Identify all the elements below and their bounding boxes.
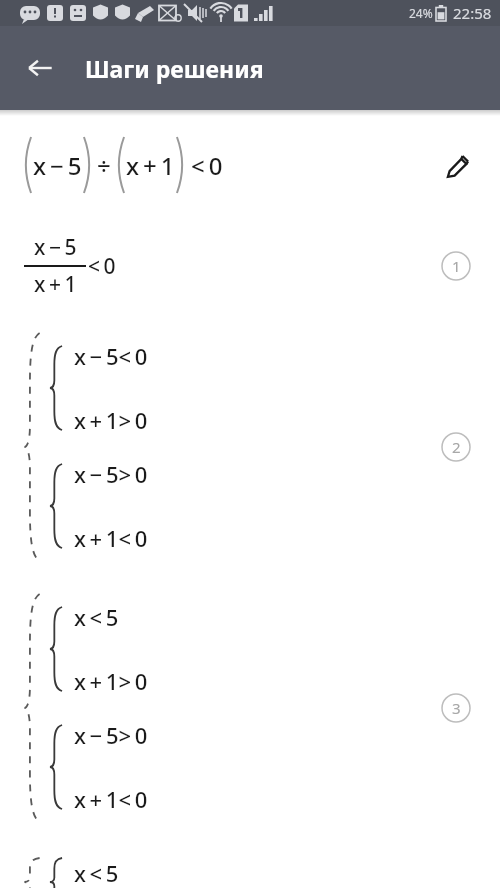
button[interactable]: 2 <box>434 425 478 469</box>
staticText: x − 5 <box>33 149 82 182</box>
button[interactable]: x < 5 <box>0 594 500 822</box>
staticText: x < 5 <box>74 858 119 888</box>
staticText: Шаги решения <box>85 53 264 84</box>
staticText: x + 1> 0 <box>74 666 148 696</box>
button[interactable]: 3 <box>434 686 478 730</box>
staticText: x < 5 <box>74 602 119 632</box>
button[interactable]: Back <box>16 44 64 92</box>
staticText: x − 5> 0 <box>74 720 148 750</box>
staticText: x + 1< 0 <box>74 784 148 814</box>
staticText: x − 5< 0 <box>74 341 148 371</box>
staticText: 3 <box>452 698 461 718</box>
staticText: x − 5> 0 <box>74 459 148 489</box>
button[interactable]: Edit <box>434 141 482 189</box>
staticText: x + 1 <box>34 270 77 299</box>
button[interactable]: x − 5< 0 <box>0 333 500 561</box>
staticText: 24% <box>409 5 433 21</box>
staticText: < 0 <box>88 252 116 281</box>
staticText: < 0 <box>191 149 223 182</box>
button[interactable]: x − 5 <box>0 116 500 214</box>
staticText: ÷ <box>97 149 111 182</box>
staticText: x − 5 <box>34 233 77 262</box>
button[interactable]: x − 5 <box>0 214 500 318</box>
button[interactable]: x < 5 <box>0 858 500 888</box>
staticText: 2 <box>452 437 461 457</box>
staticText: 22:58 <box>453 3 492 23</box>
staticText: x + 1> 0 <box>74 405 148 435</box>
staticText: x + 1 <box>126 149 175 182</box>
staticText: x + 1< 0 <box>74 523 148 553</box>
button[interactable]: 1 <box>434 244 478 288</box>
staticText: 1 <box>452 256 461 276</box>
